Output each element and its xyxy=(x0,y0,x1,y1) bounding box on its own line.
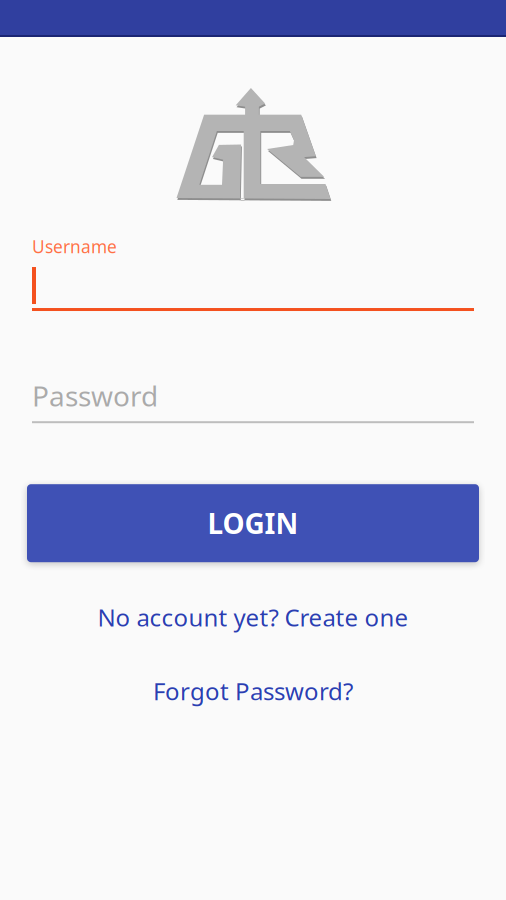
staticText: LOGIN xyxy=(207,505,298,542)
button[interactable]: Forgot Password? xyxy=(153,675,353,707)
button[interactable]: LOGIN xyxy=(27,484,479,562)
staticText: No account yet? Create one xyxy=(97,601,408,633)
staticText: Password xyxy=(32,377,158,414)
staticText: Forgot Password? xyxy=(153,675,353,707)
staticText: Username xyxy=(32,235,117,258)
button[interactable]: No account yet? Create one xyxy=(97,601,408,633)
